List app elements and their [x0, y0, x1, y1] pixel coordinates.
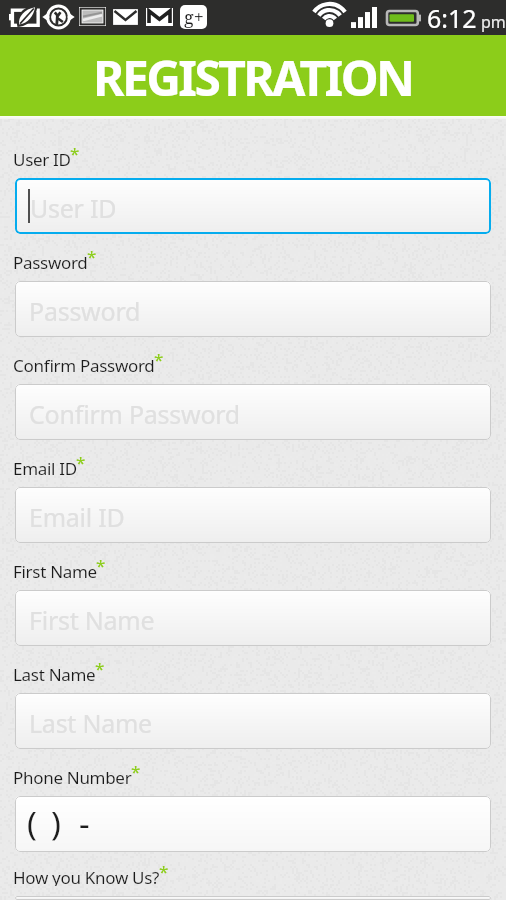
button[interactable]: Last Name — [15, 693, 491, 749]
staticText: Phone Number — [13, 766, 132, 786]
button[interactable]: Google Plus — [180, 5, 207, 29]
button[interactable]: Gmail — [146, 8, 173, 26]
staticText: * — [87, 245, 97, 265]
button[interactable]: REGISTRATION — [0, 35, 506, 116]
button[interactable]: Phone Number — [15, 796, 491, 852]
staticText: 6:12 — [427, 1, 477, 35]
staticText: REGISTRATION — [93, 45, 413, 110]
staticText: How you Know Us? — [13, 866, 160, 886]
staticText: First Name — [29, 603, 155, 637]
button[interactable]: Mobile signal — [351, 7, 379, 28]
button[interactable]: Power saver — [9, 6, 40, 27]
staticText: User ID — [13, 148, 71, 168]
staticText: Password — [29, 294, 141, 328]
button[interactable]: Email — [112, 8, 139, 26]
staticText: ) — [51, 801, 61, 846]
staticText: User ID — [30, 191, 117, 225]
button[interactable]: Password — [15, 281, 491, 337]
staticText: * — [154, 348, 164, 368]
staticText: - — [79, 801, 90, 846]
staticText: Email ID — [13, 457, 77, 477]
staticText: * — [70, 142, 80, 162]
staticText: * — [159, 860, 169, 880]
button[interactable]: Screenshot — [79, 7, 106, 26]
staticText: ( — [27, 801, 37, 846]
staticText: * — [95, 657, 105, 677]
button[interactable]: Wi-Fi signal — [312, 4, 347, 28]
staticText: * — [76, 451, 86, 471]
staticText: Last Name — [13, 663, 96, 683]
button[interactable] — [15, 896, 491, 900]
staticText: Last Name — [29, 706, 152, 740]
staticText: Email ID — [29, 500, 125, 534]
staticText: First Name — [13, 560, 97, 580]
button[interactable]: First Name — [15, 590, 491, 646]
staticText: Confirm Password — [29, 397, 240, 431]
button[interactable]: User ID — [15, 178, 491, 234]
staticText: pm — [481, 11, 506, 33]
staticText: Confirm Password — [13, 354, 155, 374]
button[interactable]: System tools — [43, 4, 74, 30]
button[interactable]: Battery — [386, 11, 421, 25]
staticText: Password — [13, 251, 88, 271]
staticText: * — [131, 760, 141, 780]
button[interactable]: Email ID — [15, 487, 491, 543]
button[interactable]: Confirm Password — [15, 384, 491, 440]
staticText: g+ — [184, 5, 204, 29]
staticText: * — [96, 554, 106, 574]
